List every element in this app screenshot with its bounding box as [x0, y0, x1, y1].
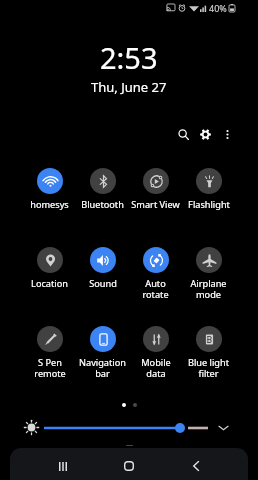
staticText: Location — [31, 277, 68, 290]
staticText: 2:53 — [100, 38, 158, 77]
button[interactable]: Expand — [214, 419, 232, 437]
button[interactable]: Settings — [194, 123, 216, 145]
button[interactable]: More options — [216, 123, 238, 145]
button[interactable]: Navigation bar — [76, 326, 129, 380]
staticText: Thu, June 27 — [91, 78, 167, 96]
staticText: Blue light filter — [188, 356, 229, 380]
button[interactable]: Location — [23, 247, 76, 290]
button[interactable]: Search — [172, 123, 194, 145]
staticText: homesys — [30, 198, 69, 211]
staticText: Smart View — [131, 198, 180, 211]
staticText: Navigation bar — [79, 356, 126, 380]
staticText: Flashlight — [188, 198, 230, 211]
staticText: Auto rotate — [142, 277, 169, 301]
staticText: Airplane mode — [190, 277, 227, 301]
button[interactable]: Home — [110, 452, 147, 480]
button[interactable]: Back — [177, 452, 214, 480]
button[interactable]: Mobile data — [129, 326, 182, 380]
button[interactable]: S Pen remote — [23, 326, 76, 380]
button[interactable]: Blue light filter — [182, 326, 235, 380]
staticText: Sound — [89, 277, 117, 290]
button[interactable]: Flashlight — [182, 168, 235, 211]
button[interactable]: Sound — [76, 247, 129, 290]
button[interactable]: Smart View — [129, 168, 182, 211]
button[interactable]: homesys — [23, 168, 76, 211]
button[interactable]: Bluetooth — [76, 168, 129, 211]
staticText: Mobile data — [141, 356, 171, 380]
button[interactable]: Auto rotate — [129, 247, 182, 301]
staticText: S Pen remote — [34, 356, 66, 380]
button[interactable]: Recents — [44, 452, 81, 480]
staticText: 40% — [209, 2, 227, 14]
staticText: Bluetooth — [81, 198, 124, 211]
button[interactable]: Airplane mode — [182, 247, 235, 301]
